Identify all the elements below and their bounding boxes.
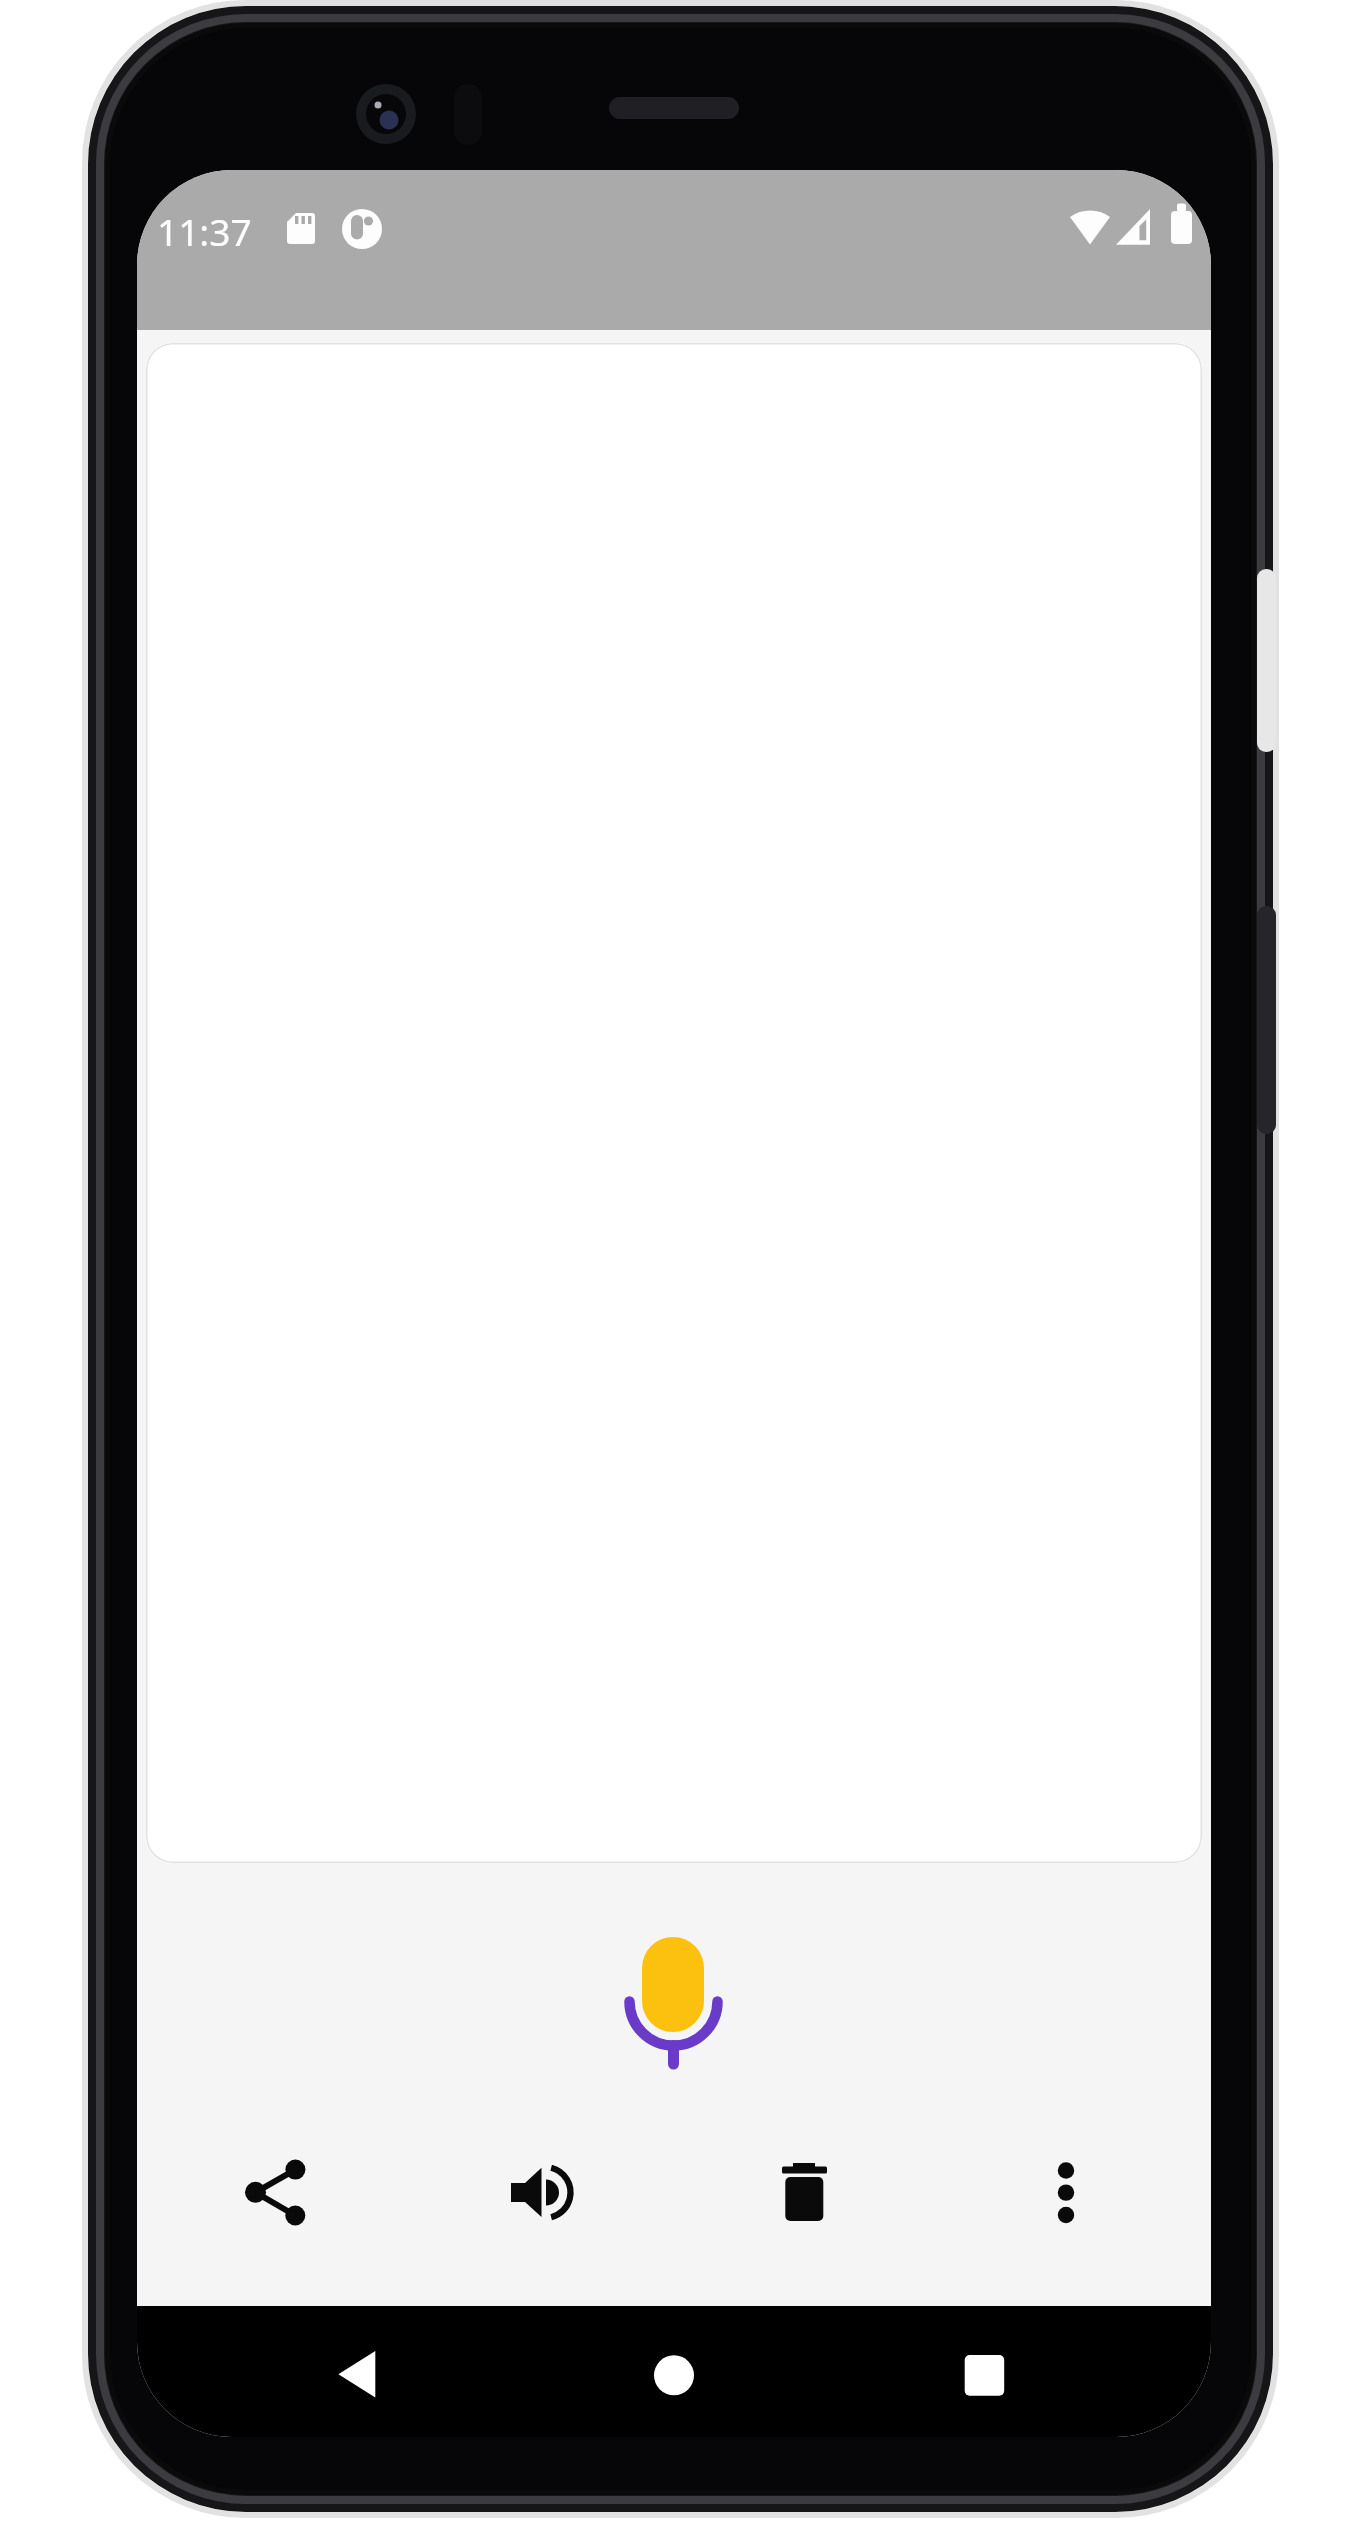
button[interactable] (297, 2315, 417, 2427)
staticText: 11:37 (157, 206, 252, 256)
button[interactable] (1018, 2144, 1114, 2240)
button[interactable] (232, 2144, 328, 2240)
button[interactable] (614, 2315, 734, 2427)
button[interactable] (492, 2144, 588, 2240)
button[interactable] (753, 2144, 849, 2240)
button[interactable] (593, 1927, 754, 2072)
button[interactable] (924, 2315, 1044, 2427)
